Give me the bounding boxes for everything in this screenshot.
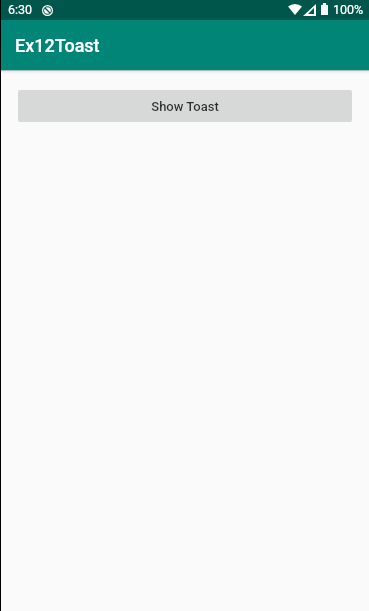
button[interactable]: Show Toast — [18, 90, 352, 122]
staticText: Ex12Toast — [15, 35, 100, 56]
staticText: 6:30 — [8, 2, 33, 17]
staticText: Show Toast — [151, 99, 219, 114]
other: Silent mode — [42, 5, 53, 16]
staticText: 100% — [333, 2, 364, 17]
